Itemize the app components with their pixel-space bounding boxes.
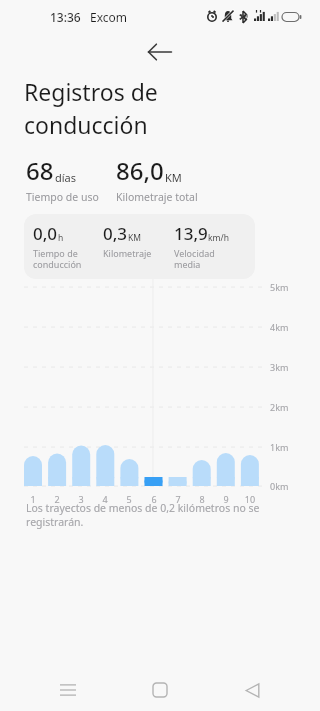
staticText: h	[58, 232, 64, 244]
staticText: 5km	[270, 281, 289, 293]
staticText: Velocidad media	[174, 247, 215, 270]
staticText: 8	[192, 493, 212, 505]
staticText: 86,0	[116, 154, 164, 187]
staticText: Tiempo de uso	[26, 190, 99, 204]
staticText: 68	[26, 154, 54, 187]
staticText: 6	[144, 493, 164, 505]
staticText: 1km	[270, 441, 289, 453]
staticText: KM	[128, 232, 141, 244]
staticText: km/h	[208, 232, 229, 244]
button[interactable]: Back	[228, 669, 276, 711]
staticText: 39	[240, 12, 249, 22]
staticText: 1	[23, 493, 43, 505]
staticText: 0km	[270, 480, 289, 492]
staticText: 0,0	[33, 222, 58, 245]
staticText: 2	[47, 493, 67, 505]
staticText: 4	[95, 493, 115, 505]
staticText: 13,9	[174, 222, 208, 245]
staticText: 0,3	[103, 222, 128, 245]
staticText: 10	[240, 493, 260, 505]
staticText: Kilometraje	[103, 247, 152, 259]
staticText: 3km	[270, 361, 289, 373]
button[interactable]: Recents	[44, 669, 92, 711]
staticText: Excom	[90, 9, 128, 25]
staticText: Kilometraje total	[116, 190, 198, 204]
staticText: Los trayectos de menos de 0,2 kilómetros…	[26, 501, 260, 529]
staticText: 3	[71, 493, 91, 505]
staticText: Registros de	[24, 76, 158, 107]
staticText: 2km	[270, 401, 289, 413]
button[interactable]: Back	[140, 34, 180, 70]
button[interactable]: 0,0	[24, 214, 255, 279]
staticText: 5	[119, 493, 139, 505]
staticText: conducción	[24, 109, 148, 140]
staticText: KM	[165, 170, 182, 185]
staticText: 9	[216, 493, 236, 505]
staticText: 4km	[270, 321, 289, 333]
staticText: 13:36	[50, 9, 81, 25]
staticText: días	[55, 170, 77, 185]
staticText: Tiempo de conducción	[33, 247, 82, 270]
button[interactable]: Home	[136, 669, 184, 711]
staticText: 7	[168, 493, 188, 505]
